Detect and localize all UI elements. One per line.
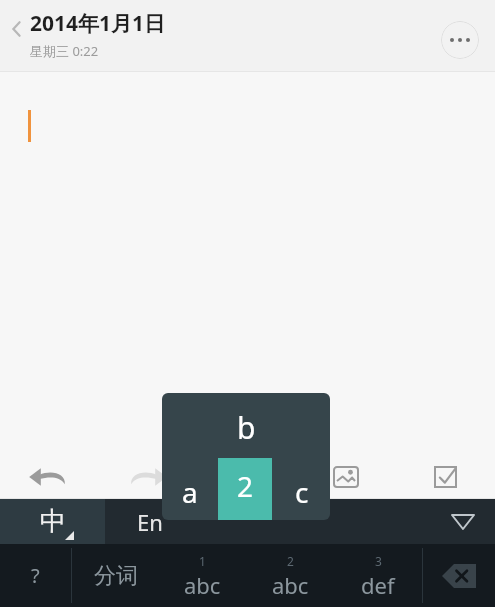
staticText: 3 [375,553,382,569]
staticText: ? [31,562,40,589]
staticText: 2014年1月1日 [30,9,166,38]
button[interactable]: Undo [28,464,68,490]
staticText: 2 [287,553,294,569]
button[interactable]: 2 [246,544,334,607]
button[interactable]: 3 [334,544,422,607]
staticText: En [137,507,163,537]
staticText: abc [272,570,309,600]
staticText: abc [184,570,221,600]
button[interactable] [423,544,495,607]
staticText: 中 [40,505,66,538]
staticText: 星期三 0:22 [30,42,99,60]
staticText: 2 [237,467,254,505]
button[interactable]: 分词 [72,544,159,607]
button[interactable]: 1 [159,544,246,607]
button[interactable]: Chinese input [0,499,105,544]
staticText: def [361,570,395,600]
button[interactable]: Redo [128,464,168,490]
staticText: 1 [199,553,206,569]
button[interactable]: More options [441,21,479,59]
button[interactable]: Insert image [332,463,360,491]
staticText: a [182,473,198,511]
button[interactable]: Back [4,16,30,42]
button[interactable]: ? [0,544,71,607]
staticText: b [237,407,256,448]
button[interactable]: Checklist [432,463,460,491]
staticText: 分词 [94,562,138,590]
button[interactable]: Hide keyboard [445,504,481,540]
staticText: c [295,473,309,511]
